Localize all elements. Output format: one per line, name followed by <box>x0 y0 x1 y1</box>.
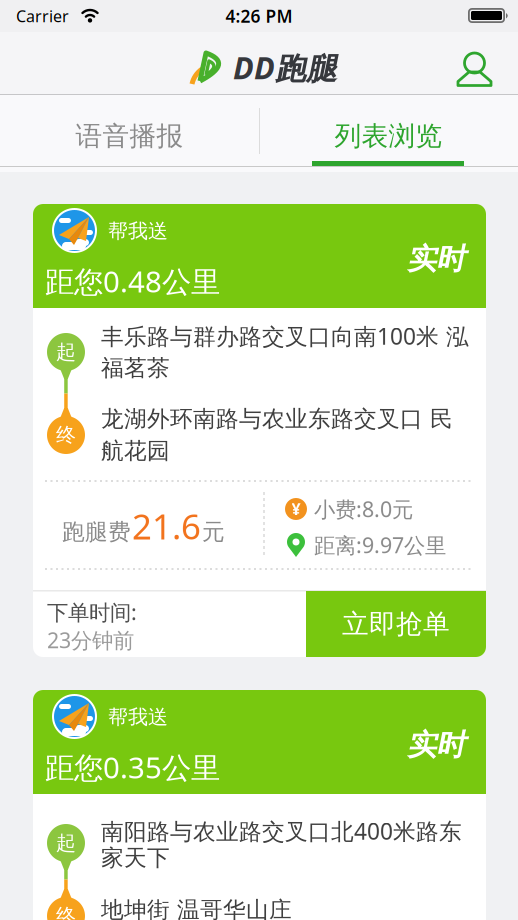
staticText: 小费:8.0元 <box>314 495 413 523</box>
button[interactable]: 语音播报 <box>0 102 259 170</box>
staticText: 起 <box>56 831 76 855</box>
staticText: 距您0.35公里 <box>45 747 220 786</box>
staticText: 元 <box>202 518 225 546</box>
staticText: 帮我送 <box>108 705 168 729</box>
staticText: 实时 <box>407 727 465 763</box>
staticText: 航花园 <box>101 437 170 465</box>
button[interactable]: Profile <box>455 49 494 87</box>
staticText: Carrier <box>16 5 69 27</box>
staticText: 龙湖外环南路与农业东路交叉口 民 <box>101 405 453 433</box>
staticText: 下单时间: <box>47 598 137 626</box>
staticText: 丰乐路与群办路交叉口向南100米 泓 <box>101 321 469 351</box>
staticText: 23分钟前 <box>47 626 134 654</box>
staticText: 距离:9.97公里 <box>314 531 446 559</box>
staticText: 列表浏览 <box>334 120 442 152</box>
staticText: 实时 <box>407 241 465 277</box>
button[interactable]: 立即抢单 <box>306 591 486 657</box>
staticText: ¥ <box>291 498 300 520</box>
staticText: DD跑腿 <box>233 47 337 88</box>
button[interactable]: 帮我送 <box>33 690 486 920</box>
staticText: 福茗茶 <box>101 354 170 382</box>
staticText: 地坤街 温哥华山庄 <box>101 896 292 920</box>
staticText: 立即抢单 <box>342 608 450 640</box>
button[interactable]: 列表浏览 <box>259 102 518 170</box>
staticText: 终 <box>56 904 76 920</box>
staticText: 起 <box>56 340 76 364</box>
staticText: 21.6 <box>132 503 201 549</box>
staticText: 跑腿费 <box>62 518 131 546</box>
staticText: 家天下 <box>101 844 170 872</box>
staticText: 距您0.48公里 <box>45 261 220 300</box>
staticText: 语音播报 <box>75 120 183 152</box>
staticText: 4:26 PM <box>225 4 292 27</box>
button[interactable]: 帮我送 <box>33 204 486 657</box>
staticText: 南阳路与农业路交叉口北400米路东 <box>101 816 462 846</box>
staticText: 帮我送 <box>108 219 168 243</box>
staticText: 终 <box>56 423 76 447</box>
